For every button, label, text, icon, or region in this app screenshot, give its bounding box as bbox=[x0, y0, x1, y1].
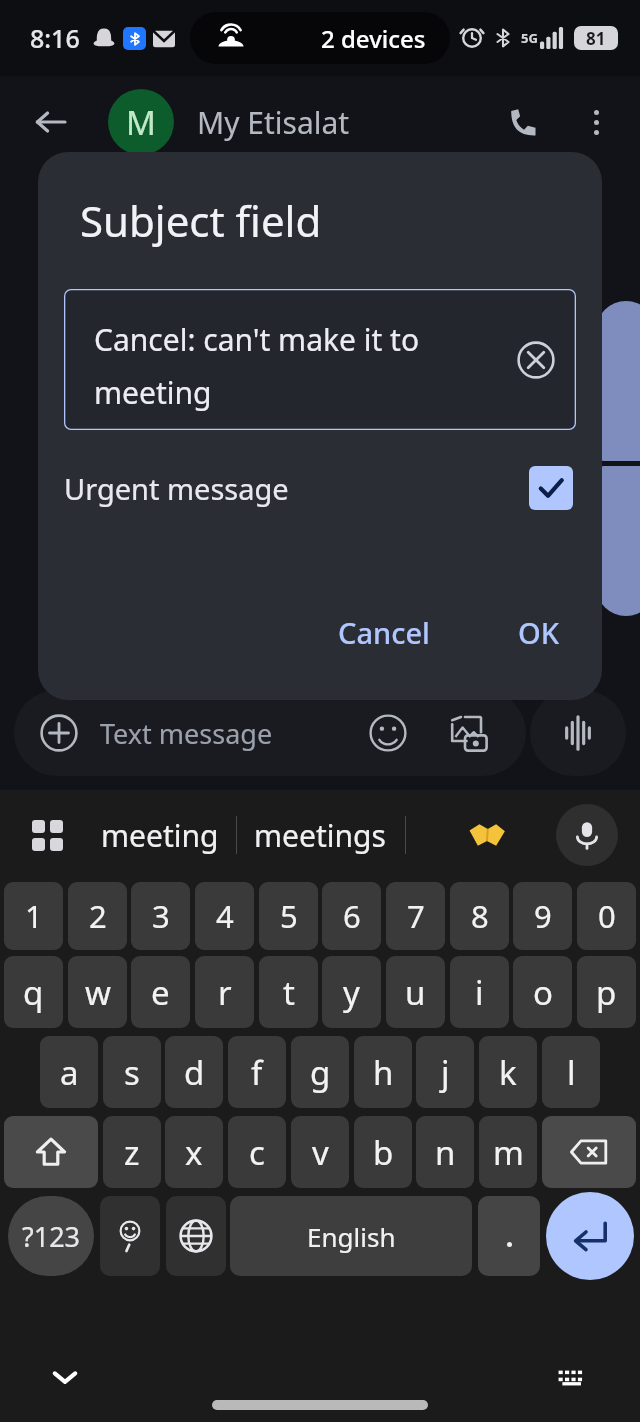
staticText: f bbox=[251, 1050, 263, 1095]
button[interactable]: Cancel bbox=[318, 601, 450, 664]
button[interactable]: Emoji keyboard bbox=[100, 1196, 160, 1276]
staticText: 4 bbox=[216, 895, 234, 937]
staticText: d bbox=[184, 1050, 205, 1095]
button[interactable]: z bbox=[103, 1116, 161, 1188]
button[interactable]: l bbox=[542, 1036, 600, 1108]
button[interactable]: Back bbox=[22, 94, 78, 150]
staticText: My Etisalat bbox=[197, 102, 350, 143]
button[interactable]: OK bbox=[498, 601, 580, 664]
staticText: a bbox=[60, 1050, 79, 1095]
button[interactable]: meetings bbox=[243, 790, 397, 880]
button[interactable]: 7 bbox=[386, 882, 445, 950]
button[interactable]: 3 bbox=[131, 882, 190, 950]
staticText: Cancel bbox=[338, 613, 430, 652]
button[interactable]: Add attachment bbox=[32, 706, 86, 760]
button[interactable]: Backspace bbox=[542, 1116, 636, 1188]
staticText: 8 bbox=[471, 895, 489, 937]
button[interactable]: n bbox=[416, 1116, 474, 1188]
button[interactable]: Gallery and camera bbox=[440, 704, 498, 762]
staticText: h bbox=[373, 1050, 394, 1095]
button[interactable]: m bbox=[479, 1116, 537, 1188]
button[interactable]: Toolbar bbox=[20, 808, 74, 862]
button[interactable]: x bbox=[165, 1116, 223, 1188]
button[interactable]: g bbox=[291, 1036, 349, 1108]
button[interactable]: v bbox=[291, 1116, 349, 1188]
button[interactable]: ?123 bbox=[8, 1196, 94, 1276]
staticText: y bbox=[343, 970, 360, 1015]
button[interactable]: Cancel: can't make it to bbox=[64, 289, 576, 430]
button[interactable] bbox=[478, 1196, 540, 1276]
button[interactable]: English bbox=[230, 1196, 472, 1276]
button[interactable]: 5 bbox=[259, 882, 318, 950]
button[interactable]: 8 bbox=[450, 882, 509, 950]
staticText: 8:16 bbox=[30, 21, 80, 55]
button[interactable]: 0 bbox=[577, 882, 636, 950]
staticText: p bbox=[596, 970, 617, 1015]
button[interactable]: t bbox=[259, 956, 318, 1028]
staticText: ?123 bbox=[22, 1218, 81, 1255]
button[interactable]: Handshake emoji bbox=[452, 790, 522, 880]
staticText: e bbox=[151, 970, 170, 1015]
button[interactable]: Emoji bbox=[360, 705, 416, 761]
button[interactable]: i bbox=[450, 956, 509, 1028]
button[interactable]: p bbox=[577, 956, 636, 1028]
button[interactable]: Call bbox=[496, 94, 552, 150]
staticText: c bbox=[249, 1130, 265, 1175]
button[interactable]: e bbox=[131, 956, 190, 1028]
staticText: English bbox=[307, 1219, 396, 1254]
staticText: Urgent message bbox=[64, 469, 289, 508]
button[interactable]: u bbox=[386, 956, 445, 1028]
button[interactable]: j bbox=[416, 1036, 474, 1108]
staticText: 9 bbox=[534, 895, 552, 937]
button[interactable]: r bbox=[195, 956, 254, 1028]
button[interactable]: 2 bbox=[68, 882, 127, 950]
staticText: 2 devices bbox=[321, 22, 426, 55]
staticText: m bbox=[493, 1130, 524, 1175]
button[interactable]: 6 bbox=[322, 882, 381, 950]
button[interactable]: M bbox=[108, 89, 174, 155]
staticText: n bbox=[435, 1130, 456, 1175]
button[interactable]: f bbox=[228, 1036, 286, 1108]
button[interactable]: meeting bbox=[84, 790, 236, 880]
staticText: t bbox=[283, 970, 295, 1015]
staticText: i bbox=[475, 970, 484, 1015]
staticText: s bbox=[124, 1050, 140, 1095]
staticText: 6 bbox=[343, 895, 361, 937]
staticText: 5G bbox=[521, 29, 538, 47]
staticText: 1 bbox=[25, 895, 43, 937]
button[interactable]: Voice message bbox=[530, 690, 626, 776]
button[interactable]: d bbox=[165, 1036, 223, 1108]
button[interactable]: h bbox=[354, 1036, 412, 1108]
button[interactable]: Shift bbox=[4, 1116, 98, 1188]
button[interactable]: w bbox=[68, 956, 127, 1028]
staticText: M bbox=[126, 100, 156, 145]
button[interactable]: Voice input bbox=[556, 804, 618, 866]
button[interactable]: 4 bbox=[195, 882, 254, 950]
staticText: 7 bbox=[407, 895, 425, 937]
staticText: v bbox=[312, 1130, 329, 1175]
button[interactable]: Switch keyboard bbox=[544, 1349, 600, 1405]
staticText: l bbox=[567, 1050, 576, 1095]
staticText: r bbox=[218, 970, 232, 1015]
button[interactable]: a bbox=[40, 1036, 98, 1108]
staticText: 81 bbox=[586, 27, 606, 50]
button[interactable]: 1 bbox=[4, 882, 63, 950]
button[interactable]: Change language bbox=[166, 1196, 226, 1276]
button[interactable]: Urgent message bbox=[38, 454, 602, 522]
button[interactable]: 9 bbox=[513, 882, 572, 950]
button[interactable]: Enter bbox=[546, 1192, 634, 1280]
button[interactable]: Clear text bbox=[510, 334, 562, 386]
button[interactable]: More options bbox=[570, 96, 622, 148]
button[interactable]: c bbox=[228, 1116, 286, 1188]
staticText: Cancel: can't make it to bbox=[94, 319, 420, 360]
staticText: meeting bbox=[94, 372, 212, 413]
staticText: k bbox=[499, 1050, 517, 1095]
button[interactable]: s bbox=[103, 1036, 161, 1108]
staticText: z bbox=[124, 1130, 140, 1175]
button[interactable]: o bbox=[513, 956, 572, 1028]
button[interactable]: y bbox=[322, 956, 381, 1028]
button[interactable]: b bbox=[354, 1116, 412, 1188]
button[interactable]: q bbox=[4, 956, 63, 1028]
button[interactable]: k bbox=[479, 1036, 537, 1108]
button[interactable]: Hide keyboard bbox=[36, 1348, 94, 1406]
